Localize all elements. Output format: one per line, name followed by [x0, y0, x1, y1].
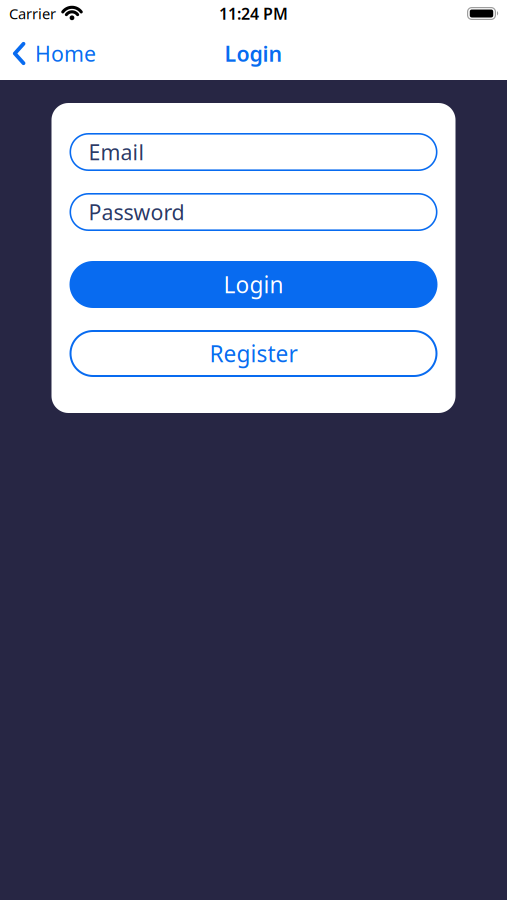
button[interactable]: Login	[69, 261, 437, 308]
staticText: Login	[224, 39, 282, 68]
button[interactable]: Back	[13, 39, 96, 68]
button[interactable]: Password	[69, 193, 437, 231]
staticText: Password	[88, 198, 184, 226]
staticText: 11:24 PM	[219, 3, 288, 24]
button[interactable]: Email	[69, 133, 437, 171]
staticText: Home	[35, 39, 96, 68]
staticText: Email	[88, 138, 144, 166]
staticText: Register	[209, 338, 297, 368]
staticText: Carrier	[9, 4, 56, 23]
staticText: Login	[223, 269, 283, 299]
button[interactable]: Register	[69, 330, 437, 377]
